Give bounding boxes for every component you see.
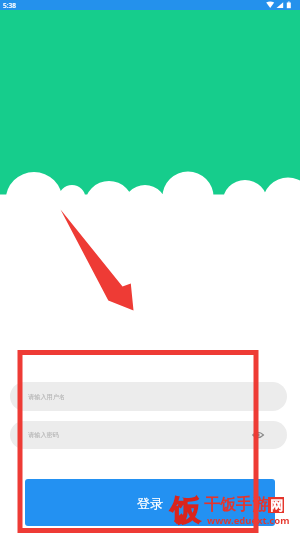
staticText: 请输入用户名 — [28, 393, 66, 401]
staticText: www.eduext.com — [207, 514, 290, 527]
other: Status icons — [266, 1, 293, 9]
staticText: 5:38 — [3, 1, 16, 10]
staticText: 干饭手游 — [204, 495, 268, 515]
staticText: 登录 — [137, 495, 163, 511]
button[interactable]: 请输入密码 — [10, 421, 287, 449]
staticText: 请输入密码 — [28, 431, 59, 439]
button[interactable]: 请输入用户名 — [10, 382, 287, 411]
button[interactable]: Show password — [244, 421, 272, 449]
staticText: 网 — [270, 497, 283, 513]
staticText: 饭 — [170, 492, 200, 530]
button[interactable]: 登录 — [25, 479, 275, 526]
